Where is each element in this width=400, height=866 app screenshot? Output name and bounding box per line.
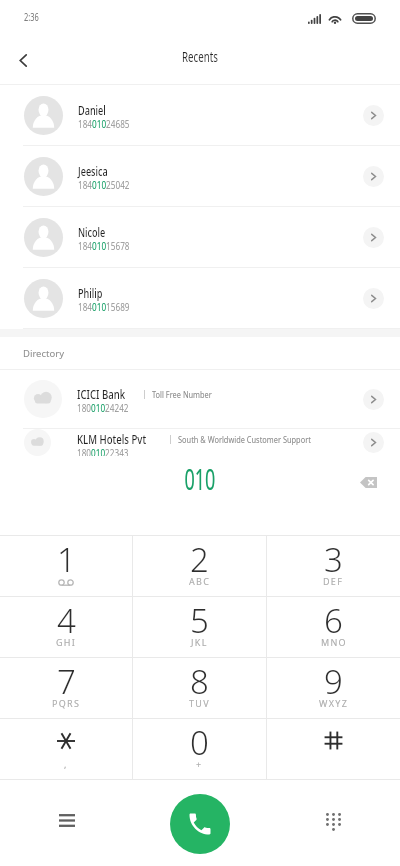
staticText: 5 — [190, 598, 209, 643]
button[interactable]: Dialpad — [267, 780, 400, 866]
button[interactable]: 9 — [267, 658, 400, 718]
button[interactable]: Details — [363, 288, 384, 309]
staticText: ABC — [189, 575, 211, 587]
staticText: 4 — [57, 598, 76, 643]
staticText: Recents — [182, 48, 218, 66]
staticText: South & Worldwide Customer Support — [178, 433, 311, 446]
staticText: 0 — [190, 720, 209, 765]
button[interactable]: 3 — [267, 536, 400, 596]
staticText: Daniel — [78, 102, 106, 118]
staticText: 010 — [184, 459, 215, 498]
staticText: 18401015689 — [78, 300, 130, 314]
staticText: , — [64, 758, 68, 770]
button[interactable]: 0 — [133, 719, 266, 779]
button[interactable]: Call — [170, 794, 230, 854]
staticText: TUV — [189, 697, 210, 709]
staticText: JKL — [191, 636, 208, 648]
button[interactable]: Daniel — [0, 85, 400, 146]
button[interactable]: Jeesica — [0, 146, 400, 207]
staticText: 18401015678 — [78, 239, 130, 253]
staticText: MNO — [321, 636, 347, 648]
staticText: KLM Hotels Pvt — [77, 431, 147, 447]
staticText: Philip — [78, 285, 103, 301]
staticText: 8 — [190, 659, 209, 704]
button[interactable] — [267, 719, 400, 779]
staticText: ICICI Bank — [77, 386, 126, 402]
staticText: 18001024242 — [77, 401, 129, 415]
staticText: Toll Free Number — [152, 388, 212, 401]
staticText: 6 — [324, 598, 343, 643]
button[interactable]: Details — [363, 432, 384, 453]
staticText: 1 — [57, 537, 76, 582]
button[interactable]: 4 — [0, 597, 132, 657]
staticText: Nicole — [78, 224, 105, 240]
button[interactable]: Details — [363, 166, 384, 187]
staticText: 2 — [190, 537, 209, 582]
staticText: 18401024685 — [78, 117, 130, 131]
staticText: Directory — [23, 347, 64, 360]
button[interactable]: Details — [363, 227, 384, 248]
button[interactable]: 7 — [0, 658, 132, 718]
button[interactable]: Details — [363, 389, 384, 410]
staticText: Jeesica — [78, 163, 108, 179]
staticText: 7 — [57, 659, 76, 704]
staticText: 2:36 — [24, 9, 39, 24]
button[interactable]: Philip — [0, 268, 400, 329]
button[interactable]: Nicole — [0, 207, 400, 268]
staticText: + — [196, 758, 203, 770]
button[interactable]: 6 — [267, 597, 400, 657]
staticText: 18401025042 — [78, 178, 130, 192]
button[interactable]: Back — [0, 35, 46, 85]
button[interactable]: ICICI Bank — [0, 370, 400, 429]
button[interactable]: 5 — [133, 597, 266, 657]
button[interactable]: 2 — [133, 536, 266, 596]
button[interactable]: Backspace — [348, 462, 388, 502]
button[interactable]: Details — [363, 105, 384, 126]
button[interactable]: KLM Hotels Pvt — [0, 429, 400, 456]
staticText: 18001022343 — [77, 446, 129, 456]
staticText: GHI — [56, 636, 77, 648]
button[interactable]: , — [0, 719, 132, 779]
button[interactable]: 8 — [133, 658, 266, 718]
button[interactable]: Call log menu — [0, 780, 133, 866]
staticText: 9 — [324, 659, 343, 704]
button[interactable]: 1 — [0, 536, 132, 596]
staticText: WXYZ — [319, 697, 349, 709]
staticText: 3 — [324, 537, 343, 582]
staticText: PQRS — [52, 697, 81, 709]
staticText: DEF — [323, 575, 344, 587]
